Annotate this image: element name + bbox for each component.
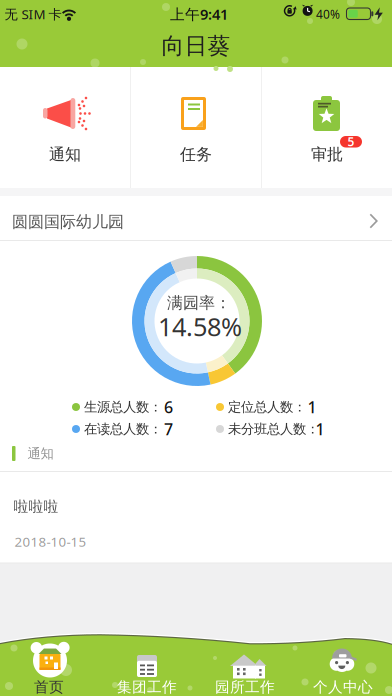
staticText: 圆圆国际幼儿园 bbox=[12, 212, 124, 232]
button[interactable]: 通知 bbox=[0, 67, 130, 188]
staticText: 定位总人数： bbox=[228, 399, 306, 415]
staticText: 满园率： bbox=[167, 293, 231, 313]
staticText: 1 bbox=[315, 418, 324, 440]
staticText: 2018-10-15 bbox=[14, 533, 86, 550]
button[interactable]: 个人中心 bbox=[294, 622, 392, 696]
staticText: 生源总人数： bbox=[84, 399, 162, 415]
button[interactable]: 5 bbox=[262, 67, 392, 188]
staticText: 通知 bbox=[49, 145, 81, 164]
staticText: 7 bbox=[164, 418, 173, 440]
staticText: 审批 bbox=[311, 145, 343, 164]
staticText: 园所工作 bbox=[215, 678, 275, 696]
staticText: 14.58% bbox=[158, 310, 242, 343]
button[interactable]: 首页 bbox=[0, 622, 98, 696]
staticText: 个人中心 bbox=[313, 678, 373, 696]
button[interactable]: 集团工作 bbox=[98, 622, 196, 696]
staticText: 无 SIM 卡 bbox=[4, 5, 61, 23]
staticText: 啦啦啦 bbox=[13, 497, 58, 515]
staticText: 通知 bbox=[27, 445, 53, 462]
staticText: 未分班总人数： bbox=[228, 421, 319, 437]
staticText: 首页 bbox=[34, 678, 64, 696]
staticText: 6 bbox=[164, 396, 173, 418]
staticText: 40% bbox=[316, 6, 340, 22]
button[interactable]: 圆圆国际幼儿园 bbox=[0, 196, 392, 240]
staticText: 在读总人数： bbox=[84, 421, 162, 437]
button[interactable]: 园所工作 bbox=[196, 622, 294, 696]
staticText: 5 bbox=[347, 134, 354, 150]
staticText: 任务 bbox=[180, 145, 212, 164]
staticText: 上午9:41 bbox=[170, 4, 228, 24]
staticText: 1 bbox=[307, 396, 316, 418]
button[interactable]: 任务 bbox=[131, 67, 261, 188]
staticText: 向日葵 bbox=[161, 32, 230, 60]
staticText: 集团工作 bbox=[117, 678, 177, 696]
